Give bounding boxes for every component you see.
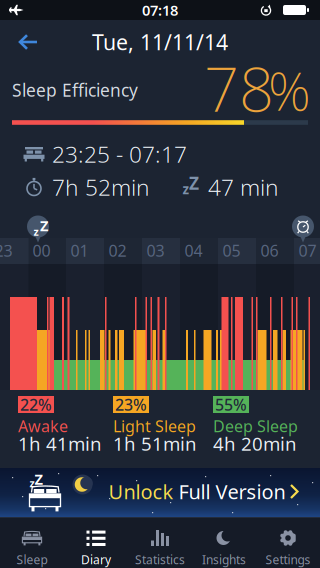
- staticText: Deep Sleep: [213, 415, 298, 437]
- staticText: Sleep Efficiency: [12, 78, 138, 101]
- staticText: 06: [260, 240, 278, 261]
- staticText: 00: [32, 240, 50, 261]
- staticText: Full Version: [178, 478, 285, 505]
- staticText: z: [182, 180, 189, 198]
- button[interactable]: z: [0, 468, 320, 517]
- staticText: 23: [0, 240, 12, 261]
- staticText: Settings: [265, 551, 310, 567]
- staticText: 1h 51min: [113, 431, 197, 456]
- button[interactable]: Diary: [64, 518, 128, 568]
- staticText: Z: [40, 216, 48, 235]
- staticText: z: [33, 224, 38, 239]
- staticText: 04: [184, 240, 202, 261]
- staticText: z: [29, 476, 34, 490]
- staticText: 03: [146, 240, 164, 261]
- staticText: Light Sleep: [113, 415, 196, 437]
- staticText: %: [268, 55, 311, 125]
- staticText: Z: [34, 469, 42, 489]
- staticText: 22%: [20, 394, 52, 415]
- staticText: 01: [70, 240, 88, 261]
- staticText: Unlock: [108, 478, 173, 505]
- staticText: 07: [298, 240, 316, 261]
- staticText: 23:25 - 07:17: [52, 139, 187, 169]
- button[interactable]: Sleep: [0, 518, 64, 568]
- staticText: 1h 41min: [18, 431, 102, 456]
- staticText: 02: [108, 240, 126, 261]
- staticText: 55%: [215, 394, 247, 415]
- staticText: 78: [204, 47, 274, 129]
- button[interactable]: z: [26, 215, 50, 243]
- staticText: Diary: [81, 551, 111, 567]
- button[interactable]: [291, 215, 315, 243]
- button[interactable]: Insights: [192, 518, 256, 568]
- staticText: 47 min: [208, 172, 279, 202]
- staticText: Awake: [18, 415, 68, 437]
- staticText: 4h 20min: [213, 431, 297, 456]
- staticText: 7h 52min: [52, 172, 150, 202]
- staticText: Z: [189, 171, 199, 194]
- button[interactable]: Statistics: [128, 518, 192, 568]
- button[interactable]: Settings: [256, 518, 320, 568]
- staticText: Statistics: [135, 551, 185, 567]
- staticText: 07:18: [142, 0, 178, 20]
- staticText: Insights: [202, 551, 246, 567]
- staticText: 23%: [115, 394, 147, 415]
- staticText: Tue, 11/11/14: [92, 28, 228, 56]
- staticText: 05: [222, 240, 240, 261]
- button[interactable]: [6, 25, 50, 59]
- staticText: Sleep: [16, 551, 47, 567]
